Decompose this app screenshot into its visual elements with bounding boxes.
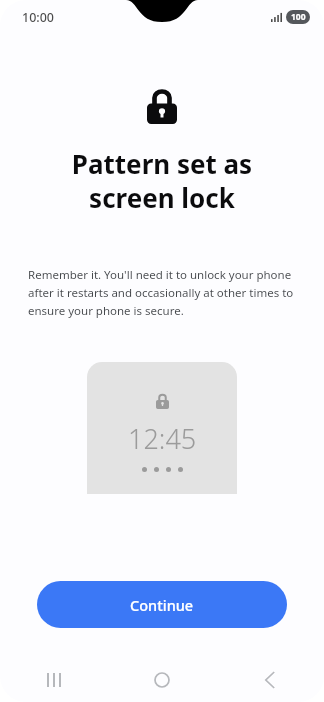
button[interactable]: Home (108, 658, 216, 702)
button[interactable]: Back (216, 658, 324, 702)
staticText: 10:00 (22, 9, 55, 26)
button[interactable]: Recent apps (0, 658, 108, 702)
button[interactable]: Continue (37, 581, 287, 628)
staticText: Remember it. You'll need it to unlock yo… (28, 267, 302, 318)
staticText: Pattern set as screen lock (20, 146, 304, 215)
staticText: Continue (130, 595, 194, 615)
staticText: 100 (291, 11, 306, 23)
staticText: 12:45 (128, 420, 197, 457)
